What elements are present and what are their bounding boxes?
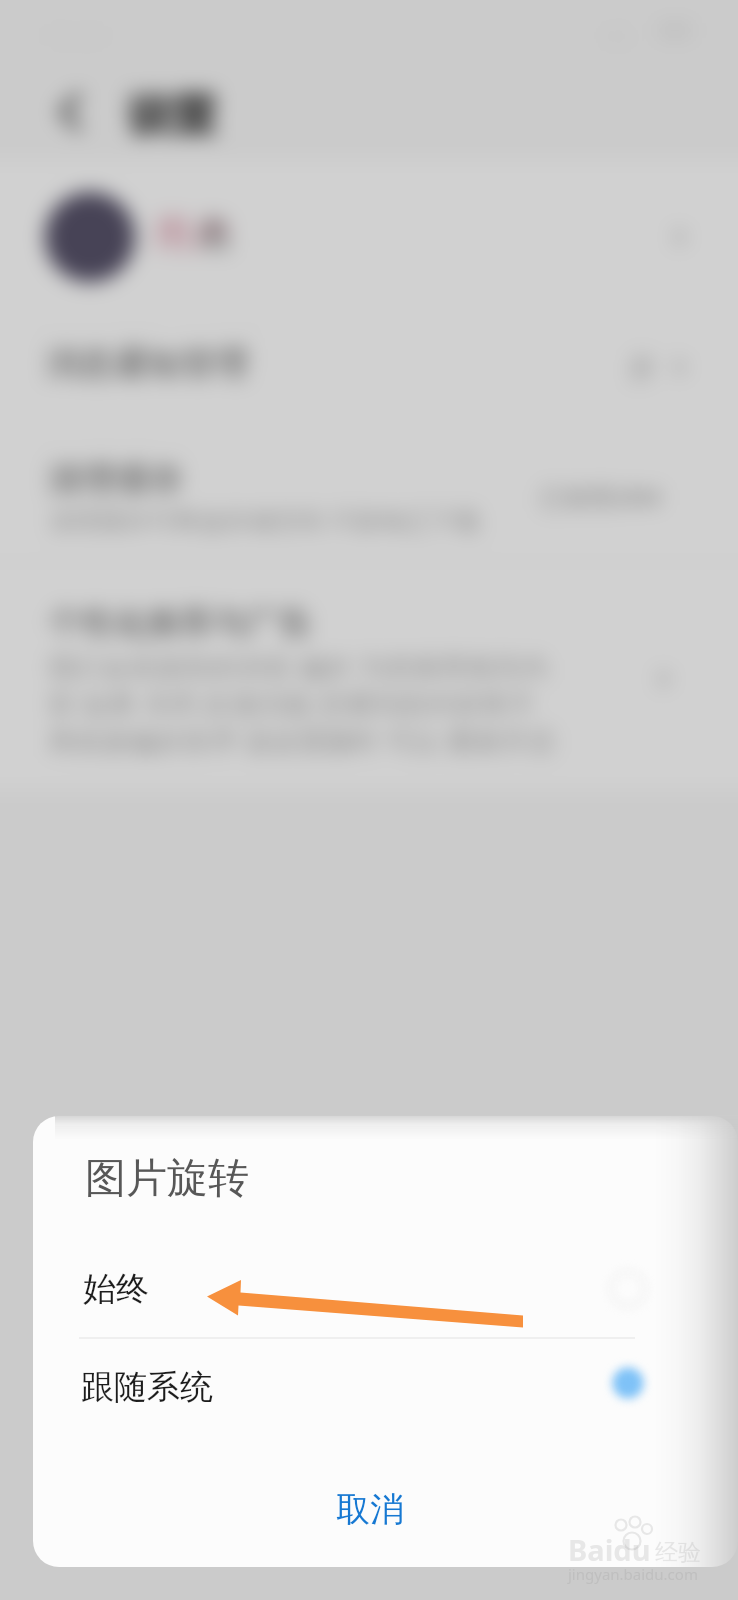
staticText: 清理缓存可释放存储空间 不影响已下载 <box>49 503 481 537</box>
button[interactable]: Back <box>49 90 93 134</box>
staticText: 消息通知管理 <box>45 342 249 385</box>
button[interactable]: 个性化推荐与广告 <box>0 563 738 790</box>
button[interactable]: 用户 <box>0 168 738 308</box>
staticText: 设置 <box>127 88 217 145</box>
staticText: jingyan.baidu.com <box>568 1564 698 1584</box>
button[interactable]: 清理缓存 <box>0 436 738 560</box>
staticText: Baidu <box>568 1530 651 1569</box>
button[interactable]: 跟随系统 <box>33 1339 706 1435</box>
staticText: 清理缓存 <box>47 458 183 501</box>
button[interactable]: 消息通知管理 <box>0 322 738 434</box>
staticText: 个性化推荐与广告 <box>48 602 312 644</box>
staticText: 经验 <box>655 1538 701 1567</box>
staticText: 我们会依据您的浏览 偏好 为您推荐相关内容 如果 关闭 此项功能 您看到的内容将… <box>48 648 556 759</box>
button[interactable]: 始终 <box>33 1241 706 1337</box>
staticText: 名 <box>196 210 234 258</box>
staticText: 已使用28M <box>540 480 662 513</box>
staticText: 始终 <box>83 1268 149 1310</box>
button[interactable]: 取消 <box>33 1461 706 1557</box>
staticText: 跟随系统 <box>81 1366 213 1408</box>
staticText: 取消 <box>336 1488 404 1531</box>
staticText: 用户 <box>153 210 229 258</box>
staticText: 图片旋转 <box>85 1153 249 1205</box>
